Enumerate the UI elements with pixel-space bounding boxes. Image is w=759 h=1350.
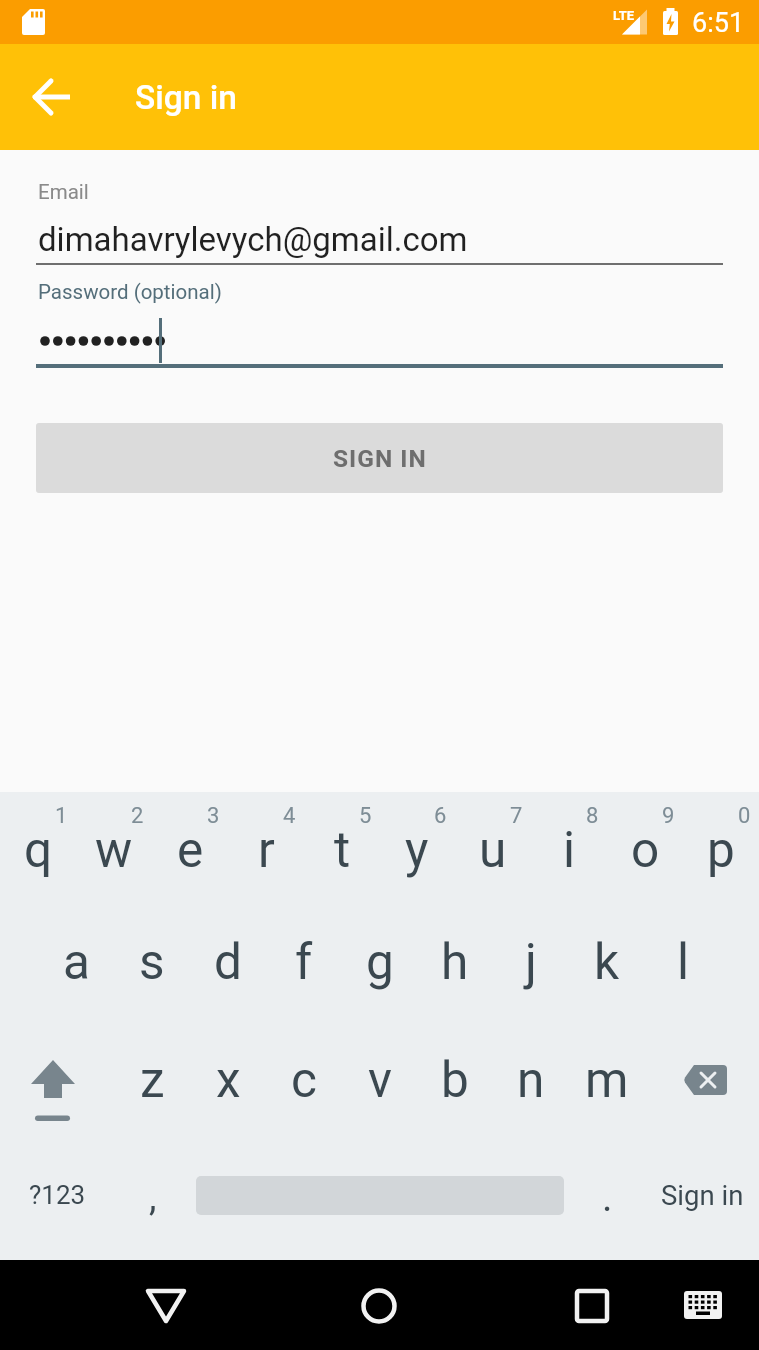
staticText: 9	[662, 803, 675, 829]
staticText: w	[95, 821, 133, 879]
button[interactable]	[126, 1265, 206, 1345]
staticText: 6	[434, 803, 447, 829]
staticText: n	[517, 1051, 545, 1109]
button[interactable]	[266, 910, 342, 1020]
button[interactable]	[569, 910, 645, 1020]
button[interactable]	[645, 910, 721, 1020]
staticText: j	[525, 933, 537, 991]
button[interactable]	[607, 800, 683, 910]
button[interactable]	[190, 1026, 266, 1136]
staticText: 6:51	[692, 7, 745, 39]
button[interactable]	[417, 910, 493, 1020]
button[interactable]	[38, 910, 114, 1020]
button[interactable]	[339, 1265, 419, 1345]
button[interactable]	[683, 800, 759, 910]
button[interactable]	[342, 910, 418, 1020]
button[interactable]: ,	[83, 1152, 223, 1242]
button[interactable]	[552, 1265, 632, 1345]
staticText: k	[594, 933, 620, 991]
button[interactable]	[569, 1026, 645, 1136]
staticText: f	[295, 933, 313, 991]
staticText: m	[585, 1051, 629, 1109]
button[interactable]	[36, 308, 723, 364]
staticText: ,	[149, 1175, 157, 1220]
button[interactable]	[417, 1026, 493, 1136]
staticText: a	[63, 933, 90, 991]
button[interactable]	[455, 800, 531, 910]
staticText: Sign in	[135, 78, 237, 117]
staticText: r	[258, 821, 275, 879]
button[interactable]	[152, 800, 228, 910]
staticText: i	[563, 821, 576, 879]
staticText: u	[479, 821, 507, 879]
button[interactable]	[380, 800, 456, 910]
staticText: d	[214, 933, 242, 991]
staticText: LTE	[613, 8, 635, 23]
staticText: p	[707, 821, 735, 879]
button[interactable]: ?123	[0, 1150, 127, 1240]
staticText: t	[334, 821, 351, 879]
button[interactable]	[342, 1026, 418, 1136]
staticText: 8	[586, 803, 599, 829]
button[interactable]	[304, 800, 380, 910]
staticText: h	[441, 933, 469, 991]
button[interactable]	[493, 1026, 569, 1136]
staticText: 2	[131, 803, 144, 829]
button[interactable]: Sign in	[632, 1150, 759, 1240]
staticText: g	[366, 933, 394, 991]
button[interactable]	[114, 1026, 190, 1136]
button[interactable]	[493, 910, 569, 1020]
staticText: x	[216, 1051, 241, 1109]
staticText: y	[405, 821, 429, 879]
staticText: dimahavrylevych@gmail.com	[38, 220, 468, 259]
button[interactable]	[531, 800, 607, 910]
staticText: Password (optional)	[38, 280, 222, 304]
staticText: Sign in	[661, 1179, 744, 1211]
button[interactable]	[266, 1026, 342, 1136]
staticText: q	[24, 821, 53, 879]
staticText: .	[602, 1174, 613, 1221]
staticText: c	[291, 1051, 317, 1109]
staticText: o	[631, 821, 660, 879]
button[interactable]	[10, 1030, 110, 1130]
staticText: 7	[510, 803, 523, 829]
button[interactable]	[655, 1030, 755, 1130]
button[interactable]: .	[537, 1152, 677, 1242]
staticText: s	[139, 933, 165, 991]
staticText: b	[441, 1051, 469, 1109]
staticText: l	[677, 933, 690, 991]
staticText: ?123	[29, 1180, 86, 1210]
button[interactable]	[0, 800, 76, 910]
staticText: 0	[738, 803, 751, 829]
button[interactable]: SIGN IN	[36, 423, 723, 493]
staticText: e	[177, 821, 204, 879]
staticText: v	[368, 1051, 392, 1109]
button[interactable]	[668, 1265, 738, 1335]
staticText: z	[140, 1051, 165, 1109]
staticText: 4	[283, 803, 296, 829]
button[interactable]	[190, 910, 266, 1020]
button[interactable]	[36, 205, 723, 263]
button[interactable]	[20, 65, 84, 129]
button[interactable]	[228, 800, 304, 910]
staticText: 3	[207, 803, 220, 829]
staticText: SIGN IN	[333, 444, 427, 473]
staticText: 1	[55, 803, 68, 829]
staticText: Email	[38, 180, 89, 204]
button[interactable]	[114, 910, 190, 1020]
button[interactable]	[76, 800, 152, 910]
staticText: 5	[359, 803, 372, 829]
